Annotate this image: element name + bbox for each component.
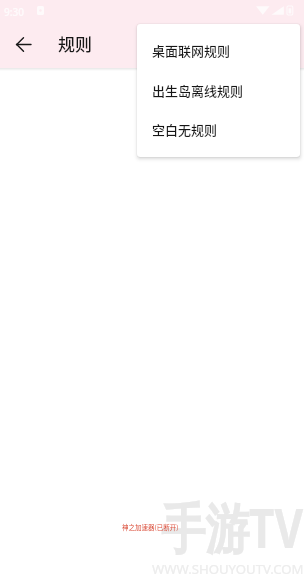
staticText: 手游TV (161, 490, 304, 564)
staticText: 规则 (58, 31, 92, 56)
staticText: 神之加速器(已断开) (122, 522, 179, 531)
button[interactable]: Back (7, 28, 40, 61)
staticText: WWW.SHOUYOUTV.COM (152, 560, 304, 578)
staticText: 出生岛离线规则 (152, 81, 244, 100)
button[interactable]: 空白无规则 (137, 110, 300, 149)
button[interactable]: 出生岛离线规则 (137, 70, 300, 110)
button[interactable]: 桌面联网规则 (137, 30, 300, 70)
staticText: 9:30 (4, 5, 24, 19)
staticText: 桌面联网规则 (152, 41, 231, 60)
staticText: 空白无规则 (152, 120, 218, 139)
